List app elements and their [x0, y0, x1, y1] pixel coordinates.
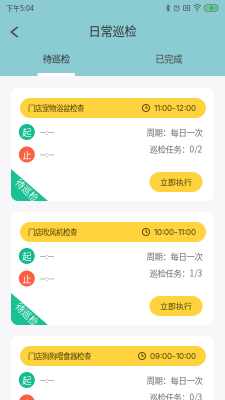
staticText: 止: [22, 148, 31, 161]
staticText: --:--: [40, 251, 54, 260]
staticText: 下午5:04: [6, 3, 34, 13]
staticText: 止: [22, 396, 31, 400]
button[interactable]: 待巡检: [11, 212, 214, 325]
staticText: 周期：每日一次: [146, 250, 202, 262]
staticText: 巡检任务：0/2: [149, 143, 202, 155]
staticText: 待巡检: [43, 52, 70, 65]
staticText: 门店吹风机检查: [28, 227, 77, 237]
staticText: 09:00-10:00: [150, 351, 196, 361]
button[interactable]: 待巡检: [11, 336, 214, 400]
staticText: 门店狗狗喂食器检查: [28, 351, 91, 361]
button[interactable]: Back: [0, 16, 26, 44]
staticText: 立即执行: [160, 176, 192, 188]
staticText: 11:00-12:00: [154, 103, 196, 113]
staticText: 已完成: [155, 52, 182, 65]
staticText: 巡检任务：1/3: [149, 267, 202, 279]
button[interactable]: 已完成: [112, 44, 225, 76]
staticText: 待巡检: [13, 183, 40, 196]
staticText: 起: [22, 125, 31, 139]
staticText: 立即执行: [160, 300, 192, 312]
staticText: --:--: [40, 127, 54, 136]
staticText: 10:00-11:00: [154, 227, 196, 237]
staticText: 周期：每日一次: [146, 374, 202, 386]
button[interactable]: 待巡检: [11, 88, 214, 201]
staticText: 起: [22, 249, 31, 263]
staticText: --:--: [40, 274, 54, 283]
staticText: 周期：每日一次: [146, 126, 202, 138]
staticText: 门店宠物浴盆检查: [28, 103, 84, 113]
button[interactable]: 待巡检: [0, 44, 112, 76]
staticText: 待巡检: [13, 307, 40, 320]
staticText: --:--: [40, 375, 54, 384]
staticText: --:--: [40, 150, 54, 159]
staticText: 止: [22, 272, 31, 285]
staticText: 起: [22, 373, 31, 387]
staticText: 日常巡检: [88, 22, 136, 40]
staticText: 巡检任务：0/3: [149, 391, 202, 400]
